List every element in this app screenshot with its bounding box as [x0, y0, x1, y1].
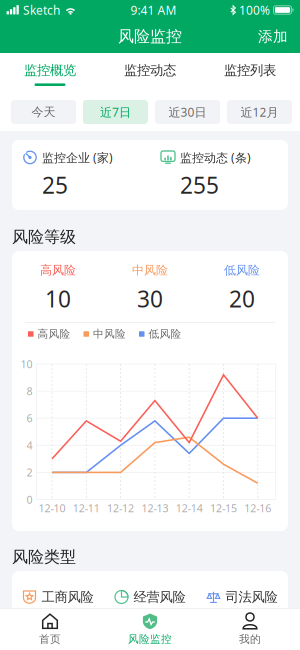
button[interactable]: 近7日: [83, 100, 148, 124]
staticText: 近30日: [168, 104, 206, 120]
button[interactable]: 首页: [0, 609, 100, 650]
staticText: 风险监控: [128, 633, 172, 646]
staticText: 风险类型: [12, 547, 76, 567]
staticText: 12-12: [107, 501, 134, 515]
staticText: 司法风险: [225, 589, 277, 605]
staticText: 高风险: [37, 327, 70, 340]
staticText: 8: [26, 384, 32, 398]
button[interactable]: 今天: [11, 100, 76, 124]
staticText: 0: [26, 492, 32, 507]
staticText: 30: [137, 284, 163, 314]
staticText: 添加: [258, 27, 288, 45]
staticText: Sketch: [23, 2, 60, 18]
button[interactable]: 近30日: [155, 100, 220, 124]
staticText: 首页: [39, 633, 61, 646]
staticText: 我的: [239, 633, 261, 646]
staticText: 20: [229, 284, 255, 314]
staticText: 监控动态 (条): [180, 149, 251, 165]
button[interactable]: 监控动态: [100, 53, 200, 93]
staticText: 12-13: [141, 501, 168, 515]
staticText: 中风险: [132, 263, 168, 278]
staticText: 12-15: [210, 501, 237, 515]
staticText: 经营风险: [133, 589, 185, 605]
staticText: 监控列表: [224, 62, 276, 78]
staticText: 100%: [239, 2, 270, 18]
staticText: 6: [26, 411, 32, 425]
staticText: 近12月: [240, 104, 278, 120]
staticText: 25: [42, 170, 68, 200]
staticText: 255: [180, 170, 219, 200]
button[interactable]: 工商风险: [12, 571, 104, 623]
staticText: 4: [26, 438, 32, 452]
button[interactable]: 添加: [246, 20, 300, 53]
staticText: 高风险: [40, 263, 76, 278]
button[interactable]: 司法风险: [196, 571, 288, 623]
button[interactable]: 近12月: [227, 100, 292, 124]
staticText: 12-10: [38, 501, 65, 515]
button[interactable]: 风险监控: [100, 609, 200, 650]
staticText: 中风险: [93, 327, 126, 340]
staticText: 12-16: [244, 501, 271, 515]
staticText: 10: [45, 284, 71, 314]
staticText: 风险监控: [118, 27, 182, 46]
staticText: 监控动态: [124, 62, 176, 78]
staticText: 2: [26, 465, 32, 479]
staticText: 低风险: [148, 327, 181, 340]
staticText: 12-11: [73, 501, 100, 515]
staticText: 10: [20, 357, 32, 371]
staticText: 12-14: [176, 501, 203, 515]
button[interactable]: 监控概览: [0, 53, 100, 93]
staticText: 监控企业 (家): [42, 149, 113, 165]
staticText: 工商风险: [41, 589, 93, 605]
staticText: 低风险: [224, 263, 260, 278]
staticText: 今天: [31, 105, 55, 119]
staticText: 风险等级: [12, 227, 76, 247]
button[interactable]: 监控列表: [200, 53, 300, 93]
staticText: 近7日: [100, 104, 131, 120]
staticText: 9:41 AM: [130, 2, 176, 18]
button[interactable]: 经营风险: [104, 571, 196, 623]
staticText: 监控概览: [24, 62, 76, 78]
button[interactable]: 我的: [200, 609, 300, 650]
